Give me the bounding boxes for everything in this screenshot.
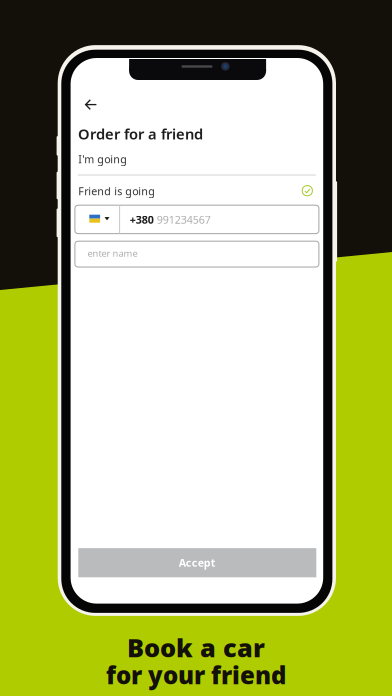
button[interactable]: Back [75,89,107,121]
button[interactable]: +380 [75,205,319,234]
staticText: for your friend [106,659,286,691]
staticText: 991234567 [157,212,211,227]
staticText: Book a car [127,631,265,664]
staticText: +380 [130,212,154,227]
button[interactable]: enter name [75,241,319,267]
staticText: enter name [87,247,137,259]
staticText: Accept [179,556,216,570]
staticText: Order for a friend [78,124,203,144]
button[interactable]: Accept [78,548,316,577]
staticText: I'm going [78,152,127,166]
staticText: Friend is going [78,184,155,198]
